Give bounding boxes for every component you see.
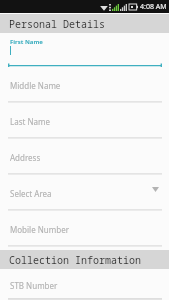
staticText: STB Number	[10, 280, 58, 291]
other: Open dropdown	[152, 187, 159, 192]
button[interactable]: Select Area	[0, 180, 169, 211]
button[interactable]: STB Number	[0, 272, 169, 300]
button[interactable]: Last Name	[0, 108, 169, 139]
staticText: First Name	[10, 38, 43, 46]
button[interactable]: Collection Information	[0, 250, 169, 269]
staticText: Last Name	[10, 116, 51, 127]
button[interactable]: Middle Name	[0, 72, 169, 103]
button[interactable]: Address	[0, 144, 169, 175]
staticText: Address	[10, 152, 41, 163]
staticText: Personal Details	[9, 17, 105, 31]
button[interactable]: Mobile Number	[0, 216, 169, 247]
staticText: 4:08 AM	[140, 2, 167, 12]
button[interactable]: Personal Details	[0, 14, 169, 33]
button[interactable]: First Name	[0, 36, 169, 67]
staticText: Collection Information	[9, 253, 141, 267]
staticText: Middle Name	[10, 80, 61, 91]
staticText: Mobile Number	[10, 224, 69, 235]
staticText: Select Area	[10, 188, 52, 199]
